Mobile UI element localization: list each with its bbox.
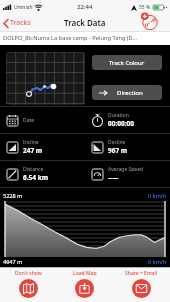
staticText: Track Data (64, 17, 106, 28)
button[interactable]: Don't show (0, 268, 56, 302)
button[interactable]: Incline (0, 134, 85, 160)
button[interactable]: Distance (0, 161, 85, 187)
staticText: Direction (117, 89, 143, 97)
staticText: Umniah (14, 4, 33, 11)
staticText: 22:44 (77, 3, 93, 11)
staticText: Distance (23, 166, 44, 173)
staticText: 247 m (23, 146, 43, 155)
staticText: Share + Email (125, 270, 158, 277)
staticText: 0 km/h (148, 258, 167, 265)
button[interactable]: Date (0, 107, 85, 133)
staticText: Decline (108, 139, 126, 146)
staticText: ----- (108, 173, 119, 182)
staticText: 6.54 km (23, 173, 49, 182)
staticText: DOLPO_8b:Numa La base camp - Pelung Tang… (3, 34, 138, 42)
staticText: Date (23, 117, 35, 124)
button[interactable]: Load Map (56, 268, 113, 302)
staticText: Duration (108, 112, 129, 119)
staticText: 4947 m (3, 258, 23, 265)
staticText: Track Colour (109, 59, 145, 67)
button[interactable]: Average Speed (85, 161, 170, 187)
staticText: Incline (23, 139, 39, 146)
button[interactable] (138, 14, 158, 31)
button[interactable]: Direction (92, 85, 162, 100)
button[interactable]: Tracks (3, 18, 31, 28)
staticText: 55 % (139, 4, 151, 11)
staticText: 00:00:00 (108, 119, 134, 128)
staticText: 0 km/h (148, 192, 167, 199)
staticText: 967 m (108, 146, 128, 155)
button[interactable]: Share + Email (113, 268, 170, 302)
button[interactable]: Track Colour (92, 55, 162, 70)
button[interactable]: Duration (85, 107, 170, 133)
staticText: Tracks (10, 18, 31, 28)
button[interactable]: Decline (85, 134, 170, 160)
staticText: Average Speed (108, 166, 144, 173)
staticText: Don't show (15, 270, 42, 277)
staticText: 5228 m (3, 192, 23, 199)
staticText: Load Map (73, 270, 97, 277)
